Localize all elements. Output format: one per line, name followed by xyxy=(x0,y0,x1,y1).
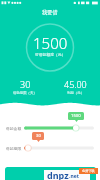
staticText: 借款期限 xyxy=(6,146,22,151)
staticText: 45.00 xyxy=(64,78,87,90)
staticText: 可借款额度（元） xyxy=(35,52,66,57)
button[interactable]: 30 xyxy=(32,132,44,142)
staticText: 借款期限（天） xyxy=(13,91,37,95)
button[interactable]: 借款金额 xyxy=(0,123,100,133)
staticText: 我要借 xyxy=(42,9,58,16)
button[interactable]: 1500 xyxy=(68,112,84,122)
staticText: 利息（元） xyxy=(67,91,84,95)
staticText: dnpz xyxy=(47,169,69,180)
staticText: 1500 xyxy=(33,33,68,51)
staticText: 30 xyxy=(36,133,41,139)
button[interactable]: 借款期限 xyxy=(0,143,100,153)
button[interactable]: 立即借款 xyxy=(5,167,96,180)
staticText: 1500 xyxy=(71,113,81,119)
staticText: 借款金额 xyxy=(6,126,22,131)
staticText: 30 xyxy=(20,78,31,90)
staticText: .net xyxy=(69,173,79,180)
staticText: 免费下载 xyxy=(82,169,95,173)
